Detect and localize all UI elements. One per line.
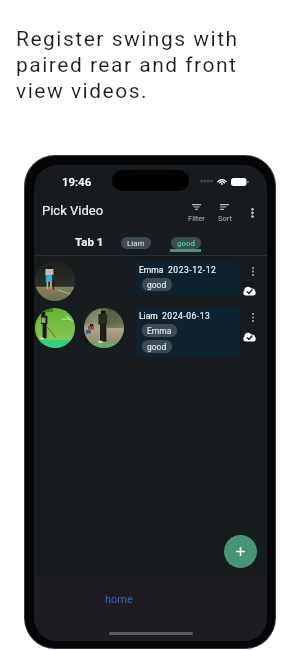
button[interactable]: Add <box>224 535 257 568</box>
button[interactable]: Emma <box>136 262 239 295</box>
staticText: good <box>147 280 167 290</box>
button[interactable]: good <box>142 278 172 291</box>
button[interactable]: Filter <box>186 204 207 223</box>
staticText: good <box>177 239 196 248</box>
button[interactable]: Liam <box>136 308 239 357</box>
button[interactable]: Video thumbnail <box>34 308 267 365</box>
button[interactable]: Sort <box>216 204 233 223</box>
staticText: Register swings with paired rear and fro… <box>16 27 239 103</box>
button[interactable]: home <box>105 593 133 606</box>
staticText: 19:46 <box>62 175 92 188</box>
staticText: Liam <box>139 311 158 321</box>
staticText: Filter <box>188 214 205 223</box>
button[interactable]: Video thumbnail <box>35 308 75 348</box>
button[interactable]: good <box>171 237 201 249</box>
button[interactable]: Item menu <box>247 263 259 279</box>
button[interactable]: Liam <box>121 237 151 249</box>
button[interactable]: Emma <box>142 324 177 337</box>
staticText: Emma <box>147 326 172 336</box>
button[interactable]: good <box>142 340 172 353</box>
button[interactable]: Tab 1 <box>75 235 104 248</box>
staticText: Emma <box>139 265 164 275</box>
button[interactable]: More options <box>245 203 259 223</box>
button[interactable]: Video thumbnail <box>84 308 124 348</box>
button[interactable]: Pick Video <box>42 203 104 218</box>
staticText: Sort <box>218 214 232 223</box>
button[interactable]: Video thumbnail <box>35 261 75 301</box>
staticText: Liam <box>127 239 145 248</box>
staticText: 2023-12-12 <box>168 265 217 275</box>
staticText: good <box>147 342 167 352</box>
button[interactable]: Item menu <box>247 309 259 325</box>
other: Uploaded <box>242 286 257 296</box>
other: Uploaded <box>242 332 257 342</box>
button[interactable]: Video thumbnail <box>34 256 267 307</box>
staticText: 2024-06-13 <box>162 311 211 321</box>
